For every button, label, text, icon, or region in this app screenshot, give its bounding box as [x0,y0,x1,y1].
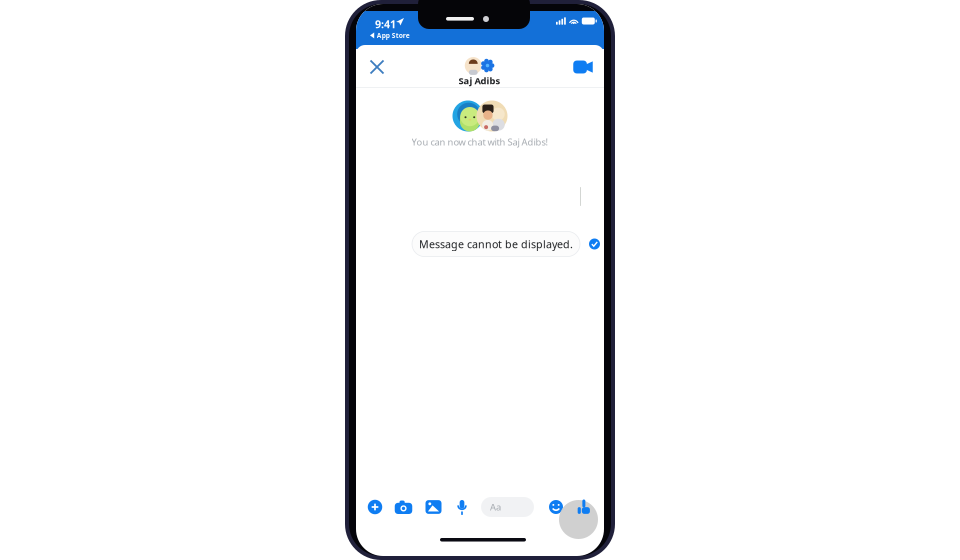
button[interactable]: Voice message [449,494,475,520]
button[interactable]: Photos [420,494,446,520]
button[interactable]: Camera [390,494,416,520]
staticText: 9:41 [375,17,396,31]
button[interactable]: Send like [572,494,596,520]
button[interactable]: Saj Adibs [434,51,524,93]
button[interactable]: Emoji [544,494,568,520]
button[interactable]: Video call [566,46,600,88]
button[interactable]: Close [360,46,394,88]
staticText: Message cannot be displayed. [419,237,573,251]
button[interactable]: Aa [481,497,534,517]
staticText: App Store [377,31,410,40]
staticText: Saj Adibs [458,75,500,87]
button[interactable]: More options [362,494,388,520]
staticText: Aa [490,501,501,513]
staticText: You can now chat with Saj Adibs! [411,136,548,148]
